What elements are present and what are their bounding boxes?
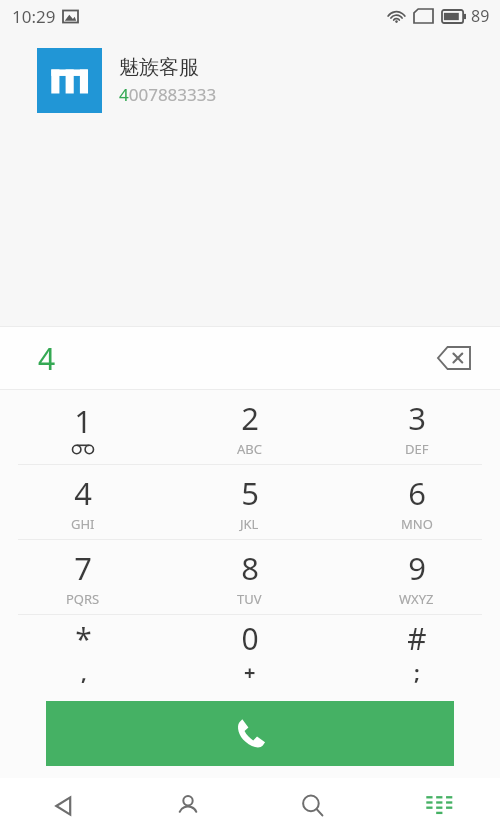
staticText: 6 xyxy=(408,472,426,514)
button[interactable]: * xyxy=(0,615,166,689)
staticText: 9 xyxy=(408,547,426,589)
staticText: 4 xyxy=(74,472,92,514)
button[interactable]: 2 xyxy=(166,390,333,464)
staticText: MNO xyxy=(401,515,433,533)
staticText: 魅族客服 xyxy=(119,55,199,80)
staticText: * xyxy=(75,618,92,659)
button[interactable]: 4 xyxy=(0,465,166,539)
staticText: + xyxy=(244,659,256,686)
staticText: 10:29 xyxy=(12,5,56,28)
staticText: ; xyxy=(414,659,420,686)
staticText: DEF xyxy=(405,440,429,458)
staticText: PQRS xyxy=(66,590,100,608)
button[interactable]: 6 xyxy=(333,465,500,539)
staticText: 7 xyxy=(74,547,92,589)
staticText: 1 xyxy=(74,400,92,442)
button[interactable]: 1 xyxy=(0,390,166,464)
staticText: GHI xyxy=(71,515,95,533)
staticText: 2 xyxy=(241,397,259,439)
button[interactable]: # xyxy=(333,615,500,689)
staticText: WXYZ xyxy=(399,590,434,608)
button[interactable]: 0 xyxy=(166,615,333,689)
button[interactable]: 3 xyxy=(333,390,500,464)
staticText: 4007883333 xyxy=(119,83,217,106)
button[interactable]: Dialpad xyxy=(375,778,500,834)
button[interactable]: 9 xyxy=(333,540,500,614)
staticText: # xyxy=(407,618,427,659)
button[interactable]: 8 xyxy=(166,540,333,614)
staticText: 8 xyxy=(241,547,259,589)
button[interactable]: 魅族客服 xyxy=(0,32,500,129)
button[interactable]: Search xyxy=(250,778,375,834)
button[interactable]: 5 xyxy=(166,465,333,539)
staticText: 3 xyxy=(408,397,426,439)
staticText: ABC xyxy=(237,440,262,458)
staticText: , xyxy=(81,659,87,686)
staticText: 89 xyxy=(471,5,490,27)
staticText: 5 xyxy=(241,472,259,514)
staticText: JKL xyxy=(240,515,259,533)
staticText: 0 xyxy=(241,618,259,659)
button[interactable]: Call xyxy=(46,701,454,766)
button[interactable]: 7 xyxy=(0,540,166,614)
staticText: TUV xyxy=(237,590,262,608)
button[interactable]: Back xyxy=(0,778,125,834)
button[interactable]: Backspace xyxy=(428,332,480,384)
button[interactable]: Contacts xyxy=(125,778,250,834)
staticText: 4 xyxy=(38,338,56,379)
